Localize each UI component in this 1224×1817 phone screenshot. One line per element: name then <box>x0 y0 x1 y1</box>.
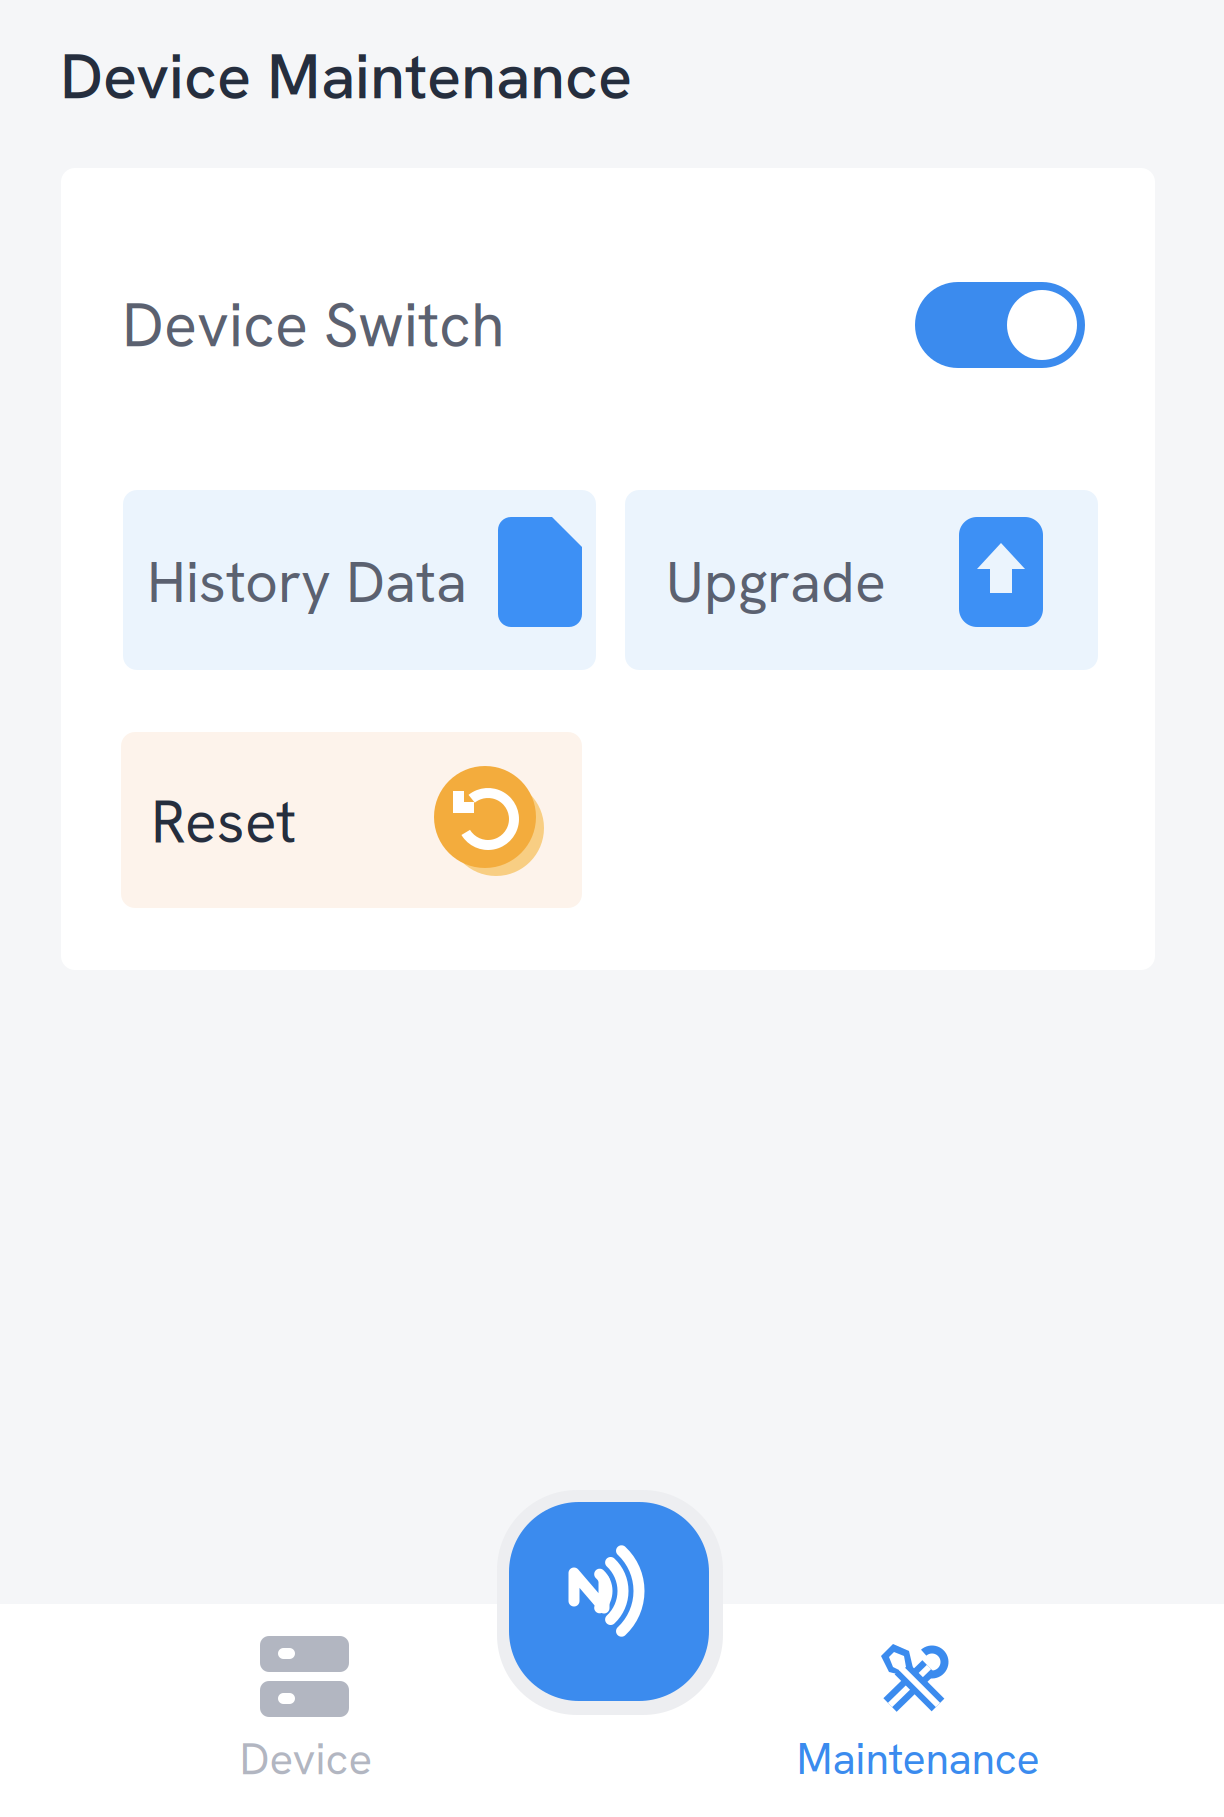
staticText: Upgrade <box>666 545 886 619</box>
button[interactable]: Maintenance <box>612 1604 1224 1817</box>
button[interactable]: Reset <box>121 732 582 908</box>
button[interactable]: Device <box>0 1604 612 1817</box>
staticText: Maintenance <box>796 1731 1039 1787</box>
staticText: Reset <box>151 784 296 860</box>
staticText: Device Maintenance <box>60 35 632 117</box>
button[interactable]: Upgrade <box>625 490 1098 670</box>
button[interactable]: History Data <box>123 490 596 670</box>
staticText: Device Switch <box>122 285 505 365</box>
staticText: Device <box>239 1730 372 1788</box>
staticText: History Data <box>147 545 467 619</box>
button[interactable]: NFC scan <box>497 1490 723 1715</box>
